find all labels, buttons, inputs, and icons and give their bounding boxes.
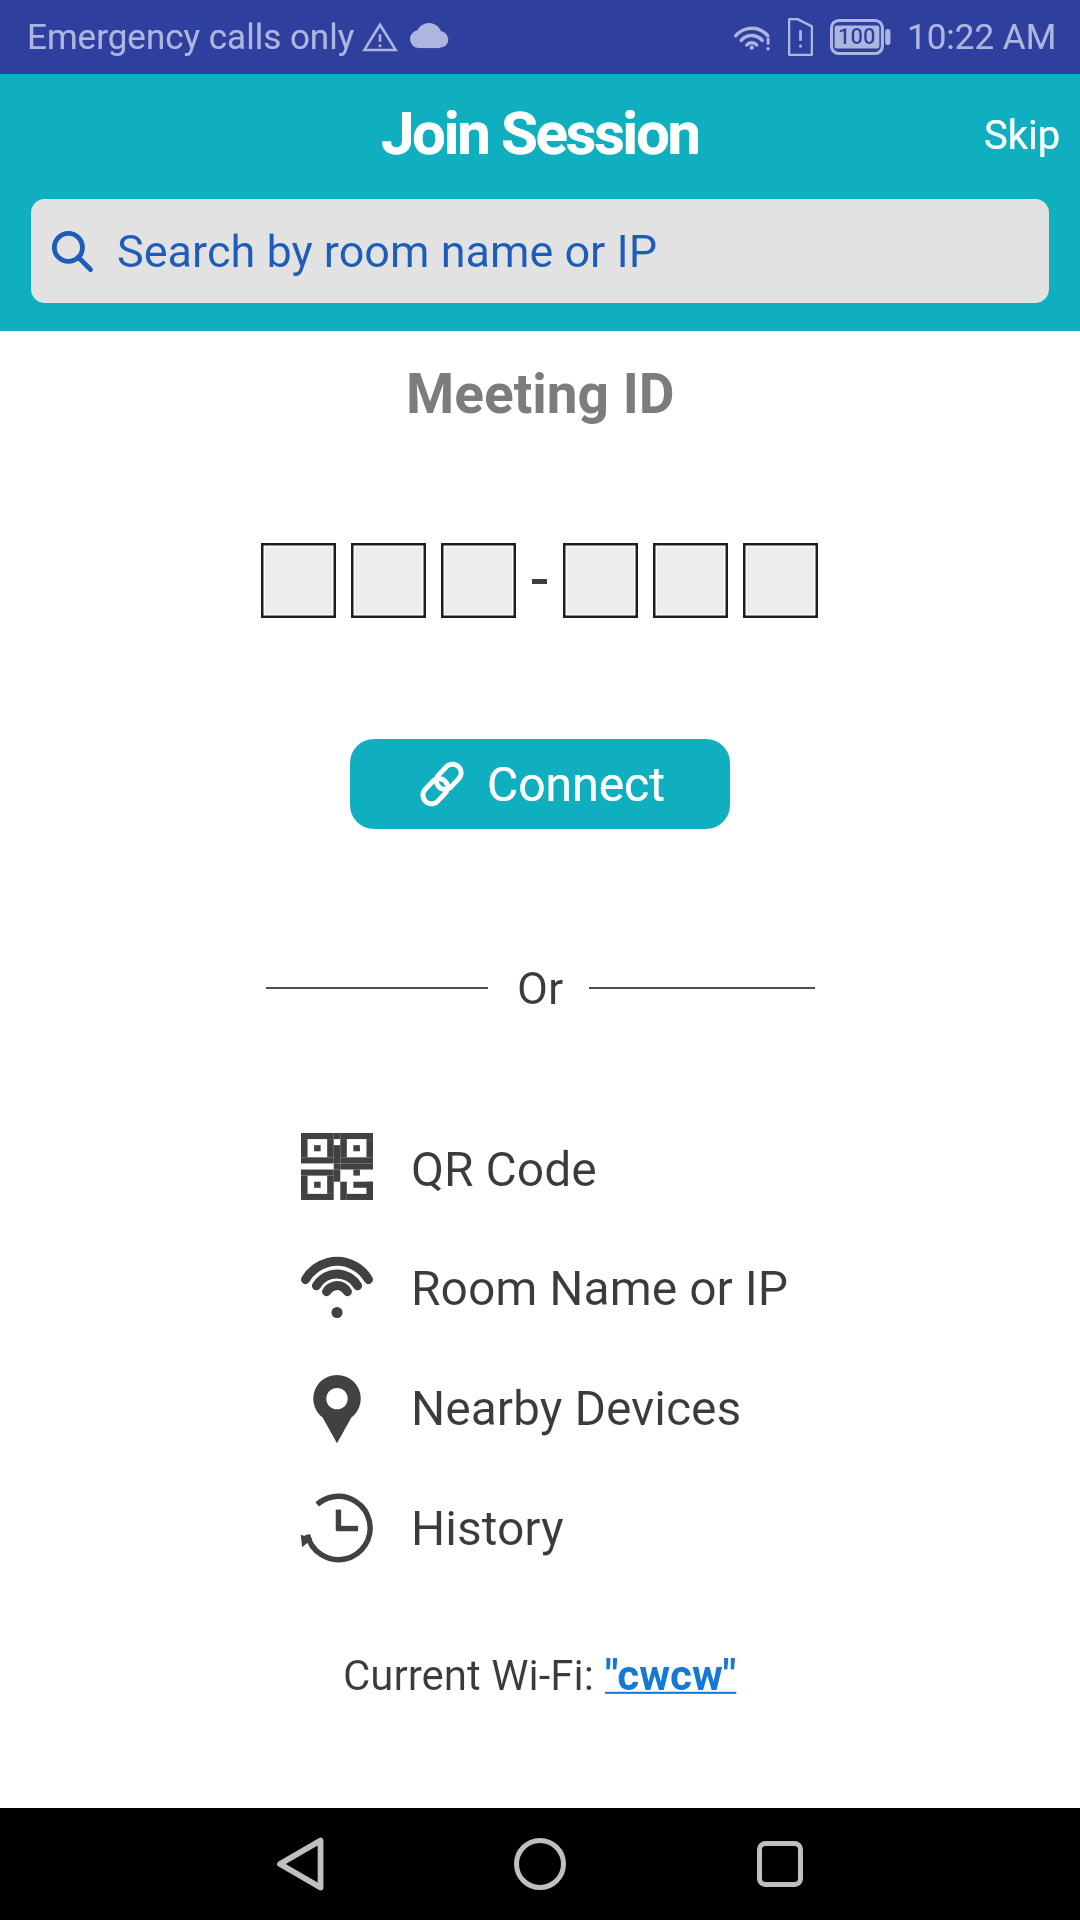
button[interactable] [441, 543, 516, 618]
staticText: Join Session [381, 98, 699, 168]
staticText: Connect [487, 756, 665, 812]
button[interactable]: Home [470, 1808, 610, 1920]
staticText: Skip [984, 112, 1061, 159]
staticText: Current Wi-Fi: [343, 1651, 605, 1700]
button[interactable] [351, 543, 426, 618]
staticText: Room Name or IP [411, 1260, 789, 1316]
staticText: QR Code [411, 1141, 597, 1197]
button[interactable] [261, 543, 336, 618]
button[interactable]: Recents [710, 1808, 850, 1920]
button[interactable] [653, 543, 728, 618]
button[interactable]: Connect [350, 739, 730, 829]
button[interactable]: History [0, 1468, 1080, 1588]
staticText: 10:22 AM [907, 17, 1057, 58]
staticText: 100 [838, 24, 876, 50]
button[interactable] [563, 543, 638, 618]
staticText: Meeting ID [406, 362, 675, 426]
staticText: "cwcw" [605, 1651, 737, 1700]
button[interactable]: Nearby Devices [0, 1348, 1080, 1468]
button[interactable]: Room Name or IP [0, 1228, 1080, 1348]
button[interactable]: "cwcw" [605, 1651, 737, 1700]
button[interactable]: Skip [974, 106, 1071, 165]
button[interactable]: QR Code [0, 1109, 1080, 1229]
staticText: Nearby Devices [411, 1380, 742, 1436]
button[interactable]: Back [230, 1808, 370, 1920]
staticText: Search by room name or IP [117, 225, 658, 278]
staticText: Or [517, 962, 564, 1015]
button[interactable] [743, 543, 818, 618]
staticText: History [411, 1500, 564, 1556]
staticText: Emergency calls only [27, 17, 355, 58]
button[interactable]: Search by room name or IP [31, 199, 1049, 303]
